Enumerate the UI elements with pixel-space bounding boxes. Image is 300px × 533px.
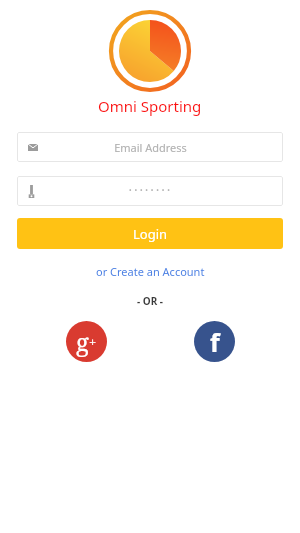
- button[interactable]: Sign in with Facebook: [194, 321, 235, 362]
- button[interactable]: Password: [17, 176, 283, 206]
- button[interactable]: Sign in with Google Plus: [66, 321, 107, 362]
- staticText: or Create an Account: [96, 264, 205, 279]
- staticText: • • • • • • • •: [129, 186, 171, 196]
- staticText: +: [89, 333, 97, 351]
- staticText: Login: [133, 225, 168, 243]
- staticText: f: [210, 325, 220, 359]
- button[interactable]: or Create an Account: [88, 261, 213, 282]
- staticText: - OR -: [137, 294, 164, 308]
- staticText: Email Address: [114, 140, 187, 155]
- staticText: Omni Sporting: [98, 96, 202, 116]
- button[interactable]: Login: [17, 218, 283, 249]
- staticText: g: [76, 325, 89, 358]
- button[interactable]: Email Address: [17, 132, 283, 162]
